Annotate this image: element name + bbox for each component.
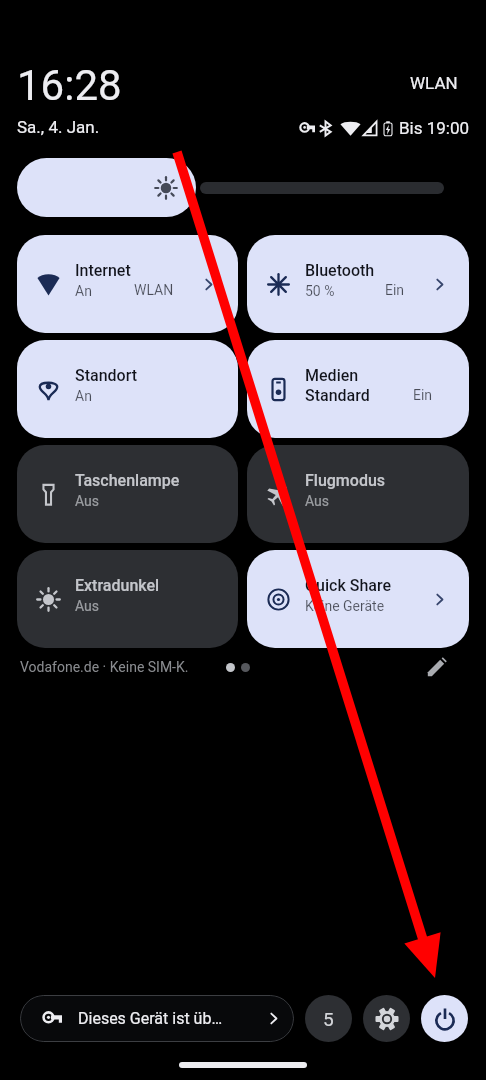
staticText: 5 <box>323 1008 334 1030</box>
staticText: 16:28 <box>17 61 122 110</box>
button[interactable]: Standort <box>17 340 238 438</box>
button[interactable]: Einstellungen <box>363 995 410 1042</box>
staticText: Internet <box>75 261 131 280</box>
staticText: An <box>75 283 92 299</box>
staticText: Aus <box>305 493 330 509</box>
staticText: Bis 19:00 <box>399 118 470 138</box>
staticText: Medien Standard <box>305 366 370 405</box>
button[interactable]: Taschenlampe <box>17 445 238 543</box>
staticText: Extradunkel <box>75 576 160 595</box>
staticText: Ein <box>385 282 405 298</box>
button[interactable]: Flugmodus <box>247 445 469 543</box>
button[interactable]: Dieses Gerät ist üb… <box>20 995 294 1042</box>
button[interactable]: Bluetooth <box>247 235 469 333</box>
button[interactable]: Internet <box>17 235 238 333</box>
staticText: WLAN <box>134 282 174 298</box>
staticText: Quick Share <box>305 576 392 595</box>
staticText: Flugmodus <box>305 471 386 490</box>
button[interactable]: Medien Standard <box>247 340 469 438</box>
staticText: WLAN <box>410 73 458 93</box>
staticText: Vodafone.de · Keine SIM-K. <box>20 659 189 675</box>
staticText: Aus <box>75 493 100 509</box>
button[interactable]: Bearbeiten <box>422 652 452 682</box>
button[interactable]: Benachrichtigungen <box>305 995 352 1042</box>
staticText: Dieses Gerät ist üb… <box>78 1009 223 1028</box>
staticText: Standort <box>75 366 138 385</box>
button[interactable]: Extradunkel <box>17 550 238 648</box>
staticText: An <box>75 388 92 404</box>
button[interactable]: Ein-/Aus-Schalter <box>421 995 468 1042</box>
staticText: Sa., 4. Jan. <box>17 117 100 137</box>
staticText: Taschenlampe <box>75 471 180 490</box>
staticText: Bluetooth <box>305 261 375 280</box>
staticText: Ein <box>413 387 433 403</box>
button[interactable]: Quick Share <box>247 550 469 648</box>
button[interactable]: Helligkeit <box>0 158 486 217</box>
staticText: 50 % <box>305 283 335 299</box>
staticText: Aus <box>75 598 100 614</box>
staticText: Keine Geräte <box>305 598 385 614</box>
